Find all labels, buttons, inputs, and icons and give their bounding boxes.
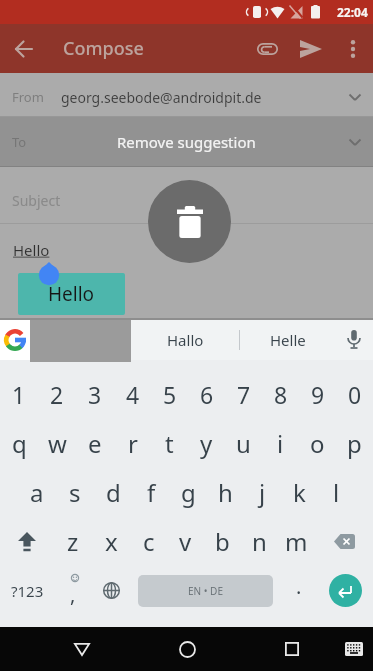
button[interactable]: c: [130, 517, 167, 566]
button[interactable]: z: [54, 517, 92, 566]
button[interactable]: 9: [299, 370, 336, 419]
staticText: m: [285, 525, 308, 558]
button[interactable]: [289, 24, 333, 73]
staticText: a: [30, 476, 44, 509]
button[interactable]: [315, 517, 373, 566]
button[interactable]: [0, 24, 48, 73]
staticText: 3: [88, 379, 102, 410]
staticText: d: [106, 476, 121, 509]
button[interactable]: w: [38, 419, 76, 468]
staticText: j: [259, 476, 266, 509]
button[interactable]: 7: [225, 370, 262, 419]
button[interactable]: d: [94, 468, 132, 517]
button[interactable]: 0: [336, 370, 373, 419]
staticText: ,: [70, 581, 76, 608]
staticText: 2: [50, 379, 64, 410]
button[interactable]: a: [18, 468, 56, 517]
staticText: l: [333, 476, 340, 509]
button[interactable]: Helle: [240, 320, 335, 360]
button[interactable]: [334, 627, 373, 671]
button[interactable]: i: [262, 419, 299, 468]
button[interactable]: e: [76, 419, 114, 468]
staticText: 4: [126, 379, 140, 410]
button[interactable]: 2: [38, 370, 76, 419]
staticText: 22:04: [337, 4, 368, 20]
button[interactable]: .: [281, 566, 317, 615]
staticText: Remove suggestion: [117, 132, 256, 152]
button[interactable]: m: [278, 517, 315, 566]
button[interactable]: b: [204, 517, 241, 566]
button[interactable]: s: [56, 468, 94, 517]
button[interactable]: ?123: [0, 566, 54, 615]
button[interactable]: p: [336, 419, 373, 468]
staticText: w: [48, 427, 67, 460]
button[interactable]: [335, 320, 373, 360]
button[interactable]: [92, 566, 130, 615]
staticText: h: [218, 476, 233, 509]
staticText: n: [252, 525, 267, 558]
button[interactable]: 4: [114, 370, 151, 419]
staticText: 9: [311, 379, 325, 410]
button[interactable]: j: [244, 468, 281, 517]
button[interactable]: f: [132, 468, 170, 517]
button[interactable]: 5: [151, 370, 188, 419]
button[interactable]: Hello: [18, 273, 125, 315]
staticText: Helle: [270, 330, 306, 350]
button[interactable]: EN • DE: [130, 566, 281, 615]
button[interactable]: 1: [0, 370, 38, 419]
staticText: u: [236, 427, 251, 460]
button[interactable]: [317, 566, 373, 615]
staticText: v: [179, 525, 192, 558]
staticText: Hello: [13, 240, 50, 260]
button[interactable]: y: [188, 419, 225, 468]
staticText: f: [147, 476, 156, 509]
button[interactable]: h: [207, 468, 244, 517]
staticText: 1: [12, 379, 26, 410]
button[interactable]: To: [0, 117, 373, 167]
staticText: Hallo: [167, 330, 204, 350]
staticText: 7: [237, 379, 251, 410]
staticText: q: [12, 427, 27, 460]
staticText: t: [165, 427, 174, 460]
button[interactable]: Subject: [0, 167, 373, 224]
button[interactable]: [268, 627, 316, 671]
button[interactable]: [148, 180, 231, 263]
staticText: x: [105, 525, 118, 558]
button[interactable]: 6: [188, 370, 225, 419]
button[interactable]: [333, 24, 373, 73]
button[interactable]: v: [167, 517, 204, 566]
button[interactable]: g: [170, 468, 207, 517]
staticText: i: [277, 427, 284, 460]
staticText: 5: [163, 379, 177, 410]
staticText: Hello: [48, 281, 95, 307]
button[interactable]: l: [318, 468, 355, 517]
button[interactable]: x: [92, 517, 130, 566]
button[interactable]: Hallo: [131, 320, 239, 360]
button[interactable]: 3: [76, 370, 114, 419]
button[interactable]: o: [299, 419, 336, 468]
staticText: .: [296, 573, 302, 600]
staticText: p: [347, 427, 362, 460]
button[interactable]: r: [114, 419, 151, 468]
button[interactable]: [163, 627, 211, 671]
button[interactable]: [0, 517, 54, 566]
staticText: 0: [348, 379, 362, 410]
staticText: 8: [274, 379, 288, 410]
staticText: EN • DE: [188, 584, 223, 598]
staticText: ?123: [11, 581, 44, 601]
button[interactable]: [0, 320, 30, 360]
button[interactable]: n: [241, 517, 278, 566]
button[interactable]: t: [151, 419, 188, 468]
button[interactable]: From: [0, 73, 373, 117]
button[interactable]: 8: [262, 370, 299, 419]
button[interactable]: u: [225, 419, 262, 468]
staticText: o: [310, 427, 325, 460]
staticText: s: [69, 476, 81, 509]
button[interactable]: ,: [54, 566, 92, 615]
staticText: e: [88, 427, 102, 460]
staticText: z: [67, 525, 79, 558]
button[interactable]: [245, 24, 289, 73]
button[interactable]: k: [281, 468, 318, 517]
button[interactable]: q: [0, 419, 38, 468]
button[interactable]: [58, 627, 106, 671]
